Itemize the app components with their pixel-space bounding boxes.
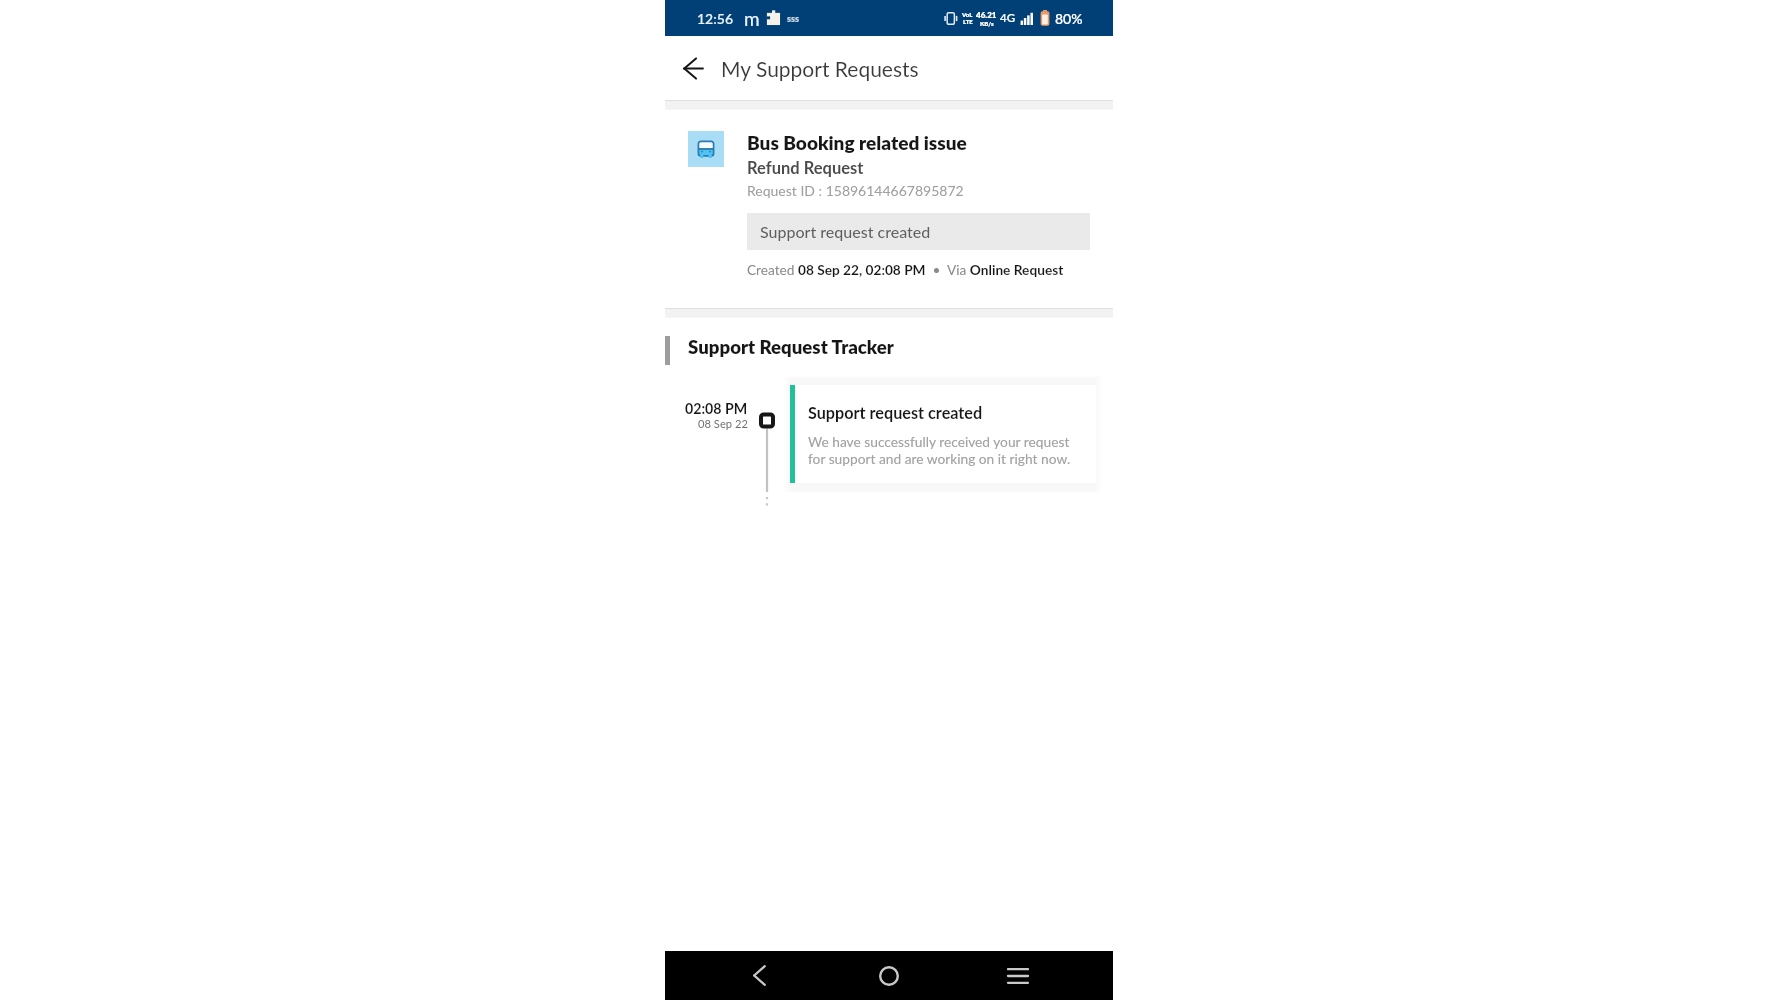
staticText: 12:56 (697, 10, 734, 27)
staticText: My Support Requests (721, 56, 919, 81)
staticText: Support request created (760, 222, 931, 241)
button[interactable]: Support request created (790, 385, 1096, 483)
staticText: m (744, 7, 760, 30)
staticText: Support Request Tracker (688, 336, 894, 358)
staticText: 08 Sep 22 (698, 417, 748, 430)
staticText: Request ID : 15896144667895872 (747, 182, 964, 199)
staticText: LTE (963, 18, 973, 25)
staticText: We have successfully received your reque… (808, 433, 1086, 467)
button[interactable]: Home (862, 951, 916, 1000)
staticText: VoL (962, 11, 973, 18)
staticText: Bus Booking related issue (747, 131, 967, 154)
staticText: Refund Request (747, 158, 864, 178)
staticText: Created 08 Sep 22, 02:08 PM • Via Online… (747, 261, 1064, 277)
button[interactable]: Back (665, 36, 721, 100)
staticText: 4G (1000, 11, 1016, 25)
staticText: 46.21 (976, 10, 997, 20)
staticText: 02:08 PM (685, 400, 748, 417)
button[interactable]: Bus Booking related issue (665, 110, 1113, 308)
staticText: Support request created (808, 403, 983, 422)
button[interactable]: Recent apps (991, 951, 1045, 1000)
staticText: 80% (1055, 10, 1083, 27)
staticText: sss (787, 13, 800, 24)
staticText: KB/s (980, 20, 994, 27)
button[interactable]: Back (732, 951, 786, 1000)
